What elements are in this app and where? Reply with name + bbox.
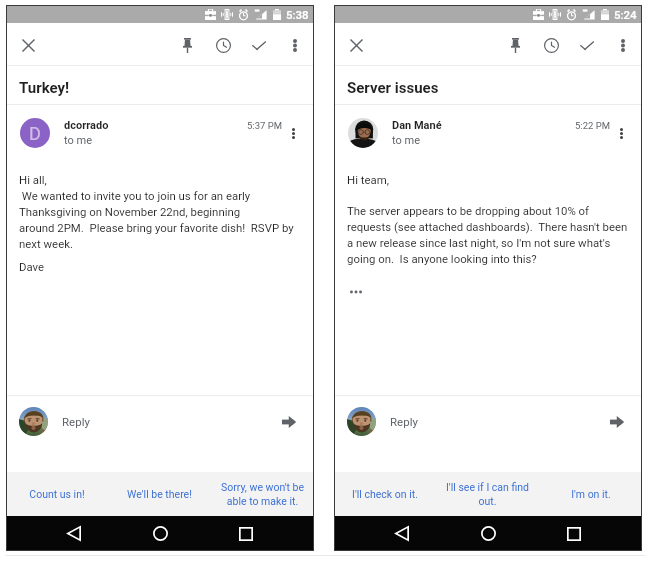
button[interactable]: Forward <box>608 413 626 431</box>
button[interactable]: Recents <box>531 516 617 551</box>
staticText: D <box>29 123 41 144</box>
button[interactable]: Show quoted text <box>350 285 368 299</box>
staticText: I'll see if I can find out. <box>439 481 536 508</box>
staticText: The server appears to be dropping about … <box>347 204 590 217</box>
button[interactable]: Home <box>445 516 531 551</box>
button[interactable]: We'll be there! <box>108 472 211 516</box>
button[interactable]: More options <box>286 119 301 147</box>
button[interactable]: Close <box>6 23 51 65</box>
button[interactable]: Count us in! <box>6 472 108 516</box>
button[interactable]: I'm on it. <box>539 472 642 516</box>
button[interactable]: Back <box>31 516 117 551</box>
button[interactable]: More options <box>277 23 313 65</box>
staticText: I'll check on it. <box>352 488 418 500</box>
staticText: next week. <box>19 237 73 250</box>
staticText: Thanksgiving on November 22nd, beginning <box>19 205 241 218</box>
button[interactable]: Sorry, we won't be able to make it. <box>211 472 314 516</box>
staticText: a new release since last night, so I'm n… <box>347 236 611 249</box>
button[interactable]: I'll see if I can find out. <box>436 472 539 516</box>
staticText: Sorry, we won't be able to make it. <box>214 481 311 508</box>
staticText: We wanted to invite you to join us for a… <box>19 189 251 202</box>
button[interactable]: Done <box>569 23 605 65</box>
staticText: dcorrado <box>64 119 109 132</box>
staticText: Hi team, <box>347 173 389 186</box>
staticText: 5:24 <box>614 8 637 21</box>
button[interactable]: Pin <box>497 23 533 65</box>
staticText: Dave <box>19 260 45 273</box>
button[interactable]: More options <box>605 23 641 65</box>
staticText: We'll be there! <box>127 488 192 500</box>
button[interactable]: Profile <box>19 407 48 436</box>
staticText: to me <box>64 134 92 147</box>
button[interactable]: Pin <box>169 23 205 65</box>
button[interactable]: Recents <box>203 516 289 551</box>
staticText: 5:37 PM <box>247 120 282 131</box>
button[interactable]: Snooze <box>205 23 241 65</box>
staticText: Reply <box>62 415 90 428</box>
staticText: Dan Mané <box>392 119 442 132</box>
button[interactable]: Profile <box>347 407 376 436</box>
button[interactable]: D <box>6 105 314 161</box>
button[interactable]: Reply <box>390 415 608 428</box>
button[interactable]: More options <box>614 119 629 147</box>
staticText: 5:22 PM <box>575 120 610 131</box>
button[interactable]: Home <box>117 516 203 551</box>
button[interactable]: Back <box>359 516 445 551</box>
staticText: Count us in! <box>29 488 85 500</box>
staticText: 5:38 <box>286 8 309 21</box>
button[interactable]: Done <box>241 23 277 65</box>
button[interactable]: Forward <box>280 413 298 431</box>
button[interactable]: Snooze <box>533 23 569 65</box>
button[interactable]: Close <box>334 23 379 65</box>
staticText: I'm on it. <box>571 488 611 500</box>
staticText: to me <box>392 134 420 147</box>
staticText: Server issues <box>347 79 439 97</box>
staticText: Reply <box>390 415 418 428</box>
staticText: Hi all, <box>19 173 47 186</box>
staticText: going on. Is anyone looking into this? <box>347 252 537 265</box>
staticText: Turkey! <box>19 79 70 97</box>
button[interactable]: Dan Mané <box>334 105 642 161</box>
staticText: around 2PM. Please bring your favorite d… <box>19 221 294 234</box>
staticText: requests (see attached dashboards). Ther… <box>347 220 628 233</box>
button[interactable]: Reply <box>62 415 280 428</box>
button[interactable]: I'll check on it. <box>334 472 436 516</box>
